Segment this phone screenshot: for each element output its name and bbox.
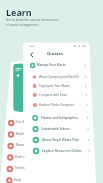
button[interactable] [30,90,85,100]
button[interactable] [6,118,30,129]
staticText: Settings [15,166,28,170]
staticText: Waste Dumping and Backfill [39,75,79,79]
staticText: News and Blog [16,143,39,147]
staticText: About Royal Waste Plan [42,137,80,141]
button[interactable] [5,152,29,163]
button[interactable] [31,135,86,145]
staticText: Draft and Plan [15,155,37,159]
staticText: Help [14,178,21,182]
button[interactable] [5,164,29,175]
staticText: Compost with Ease [39,93,67,97]
button[interactable] [6,141,30,152]
staticText: Segregate Your Waste [39,84,70,88]
button[interactable]: Back [28,50,37,59]
button[interactable] [30,113,85,123]
staticText: Our Mission [16,120,35,124]
button[interactable] [31,146,86,156]
staticText: Multimedia [16,132,34,136]
button[interactable] [31,124,86,134]
button[interactable] [4,175,28,183]
staticText: Manage Your Waste [37,63,66,67]
button[interactable] [30,81,85,91]
button[interactable] [6,129,30,140]
button[interactable] [28,61,83,71]
staticText: Quizzes [47,51,64,57]
staticText: Sustainable Videos [41,127,70,131]
staticText: Explore Resources Online [42,148,83,152]
staticText: Get to know the various dimensions of wa… [6,18,59,27]
button[interactable] [30,100,85,110]
staticText: Learn [6,6,32,18]
button[interactable] [29,72,84,82]
staticText: Plastics and Infographics [41,116,78,120]
staticText: Reduce Plastic Footprint [39,103,75,107]
